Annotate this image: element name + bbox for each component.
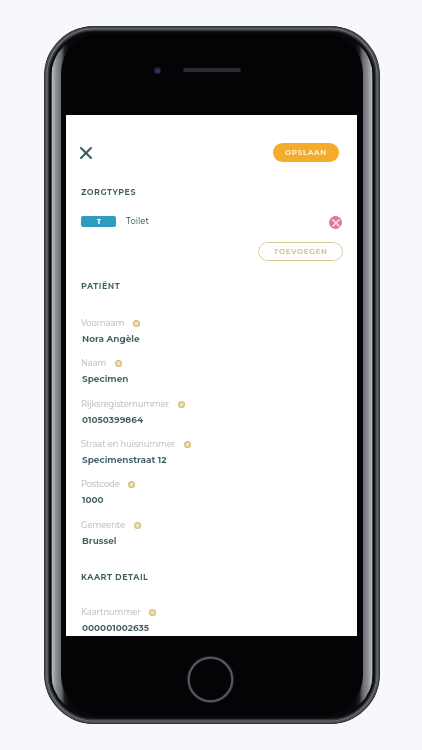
staticText: Specimen (82, 373, 129, 384)
staticText: Rijksregisternummer (81, 399, 170, 409)
staticText: Straat en huisnummer (81, 439, 176, 449)
button[interactable]: Verwijderen (329, 216, 342, 229)
staticText: 01050399864 (82, 414, 144, 425)
staticText: Naam (81, 358, 107, 368)
staticText: T (97, 218, 101, 226)
button[interactable]: Sluiten (77, 144, 95, 162)
staticText: KAART DETAIL (81, 572, 149, 582)
staticText: Specimenstraat 12 (82, 454, 167, 465)
staticText: PATIËNT (81, 281, 121, 291)
button[interactable]: TOEVOEGEN (258, 242, 343, 261)
staticText: ZORGTYPES (81, 187, 137, 197)
staticText: 000001002635 (82, 622, 150, 633)
staticText: OPSLAAN (285, 148, 327, 157)
button[interactable]: OPSLAAN (273, 143, 339, 162)
staticText: Brussel (82, 535, 117, 546)
staticText: 1000 (82, 494, 104, 505)
staticText: Toilet (126, 216, 149, 226)
button[interactable]: T (81, 216, 116, 227)
staticText: Kaartnummer (81, 607, 141, 617)
staticText: TOEVOEGEN (274, 247, 328, 256)
staticText: Voornaam (81, 318, 125, 328)
staticText: Nora Angèle (82, 333, 140, 344)
staticText: Gemeente (81, 520, 126, 530)
staticText: Postcode (81, 479, 120, 489)
